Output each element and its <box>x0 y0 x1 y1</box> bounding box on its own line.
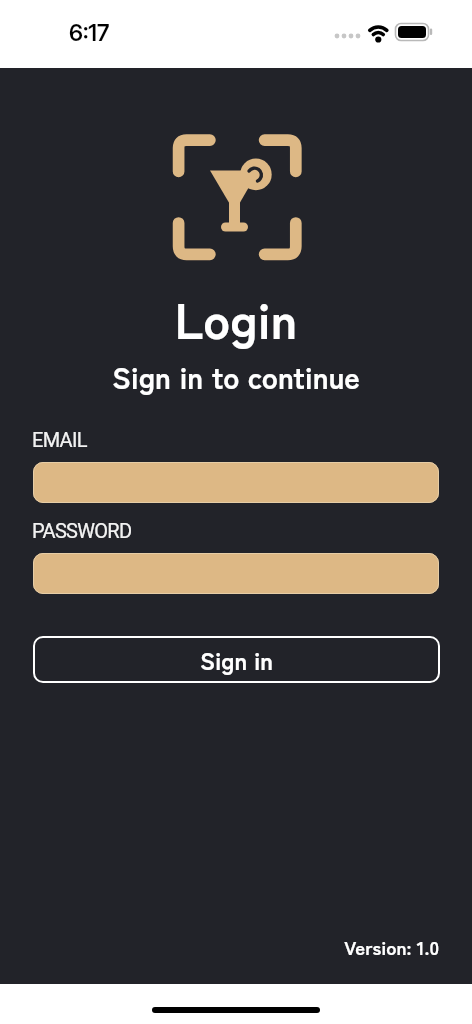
button[interactable] <box>33 462 439 503</box>
staticText: Sign in <box>200 642 273 677</box>
staticText: PASSWORD <box>32 519 132 542</box>
staticText: EMAIL <box>32 428 87 451</box>
staticText: Login <box>0 281 472 353</box>
staticText: Version: 1.0 <box>0 933 439 961</box>
staticText: Sign in to continue <box>0 354 472 397</box>
button[interactable] <box>33 553 439 594</box>
button[interactable]: Sign in <box>33 636 440 683</box>
staticText: 6:17 <box>69 19 110 47</box>
